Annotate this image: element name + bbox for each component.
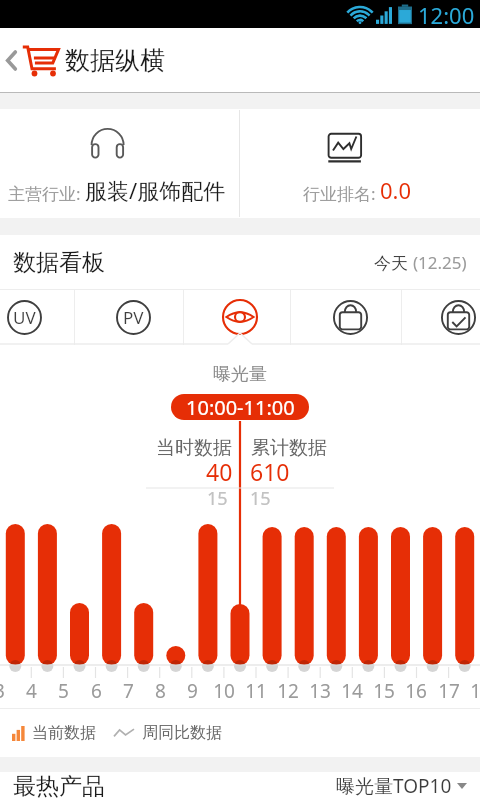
button[interactable]: Back — [0, 28, 22, 93]
staticText: 当前数据 — [32, 723, 96, 743]
staticText: 9 — [187, 678, 198, 704]
button[interactable]: 10:00-11:00 — [171, 394, 309, 420]
staticText: 10:00-11:00 — [186, 394, 295, 420]
staticText: 累计数据 — [251, 436, 327, 460]
staticText: 7 — [123, 678, 134, 704]
staticText: (12.25) — [413, 251, 467, 274]
button[interactable]: 行业排名: — [240, 109, 480, 218]
staticText: 服装/服饰配件 — [85, 175, 226, 205]
button[interactable]: 主营行业: — [0, 109, 239, 218]
staticText: 10 — [213, 678, 235, 704]
staticText: 16 — [405, 678, 427, 704]
staticText: 18 — [470, 678, 480, 704]
button[interactable]: 当前数据 — [12, 723, 96, 743]
staticText: 当时数据 — [156, 436, 232, 460]
staticText: 8 — [155, 678, 166, 704]
staticText: 14 — [341, 678, 363, 704]
button[interactable]: 今天 — [374, 251, 467, 274]
button[interactable]: Exposure — [213, 290, 267, 344]
staticText: 今天 — [374, 251, 413, 274]
staticText: 曝光量 — [213, 363, 267, 386]
staticText: 曝光量TOP10 — [336, 773, 452, 799]
staticText: 0.0 — [380, 175, 412, 205]
button[interactable]: 周同比数据 — [113, 723, 222, 743]
staticText: 数据看板 — [13, 248, 105, 277]
staticText: 17 — [438, 678, 460, 704]
staticText: 6 — [91, 678, 102, 704]
button[interactable]: PV — [106, 290, 160, 344]
staticText: 40 — [206, 456, 233, 487]
staticText: 行业排名: — [303, 182, 380, 205]
staticText: 610 — [250, 456, 290, 487]
button[interactable]: 曝光量TOP10 — [336, 773, 467, 799]
staticText: 4 — [26, 678, 37, 704]
staticText: 15 — [373, 678, 395, 704]
staticText: 周同比数据 — [142, 723, 222, 743]
button[interactable]: Paid orders — [431, 290, 480, 344]
staticText: 12:00 — [418, 0, 475, 28]
staticText: 13 — [309, 678, 331, 704]
staticText: 数据纵横 — [65, 45, 165, 76]
staticText: 11 — [245, 678, 267, 704]
staticText: 最热产品 — [13, 772, 105, 800]
staticText: 3 — [0, 678, 5, 704]
staticText: 12 — [277, 678, 299, 704]
staticText: PV — [123, 306, 144, 329]
staticText: 主营行业: — [8, 182, 85, 205]
button[interactable]: UV — [0, 290, 51, 344]
button[interactable]: Orders — [323, 290, 377, 344]
staticText: 15 — [250, 486, 271, 511]
staticText: UV — [13, 306, 36, 329]
staticText: 5 — [58, 678, 69, 704]
staticText: 15 — [207, 486, 228, 511]
